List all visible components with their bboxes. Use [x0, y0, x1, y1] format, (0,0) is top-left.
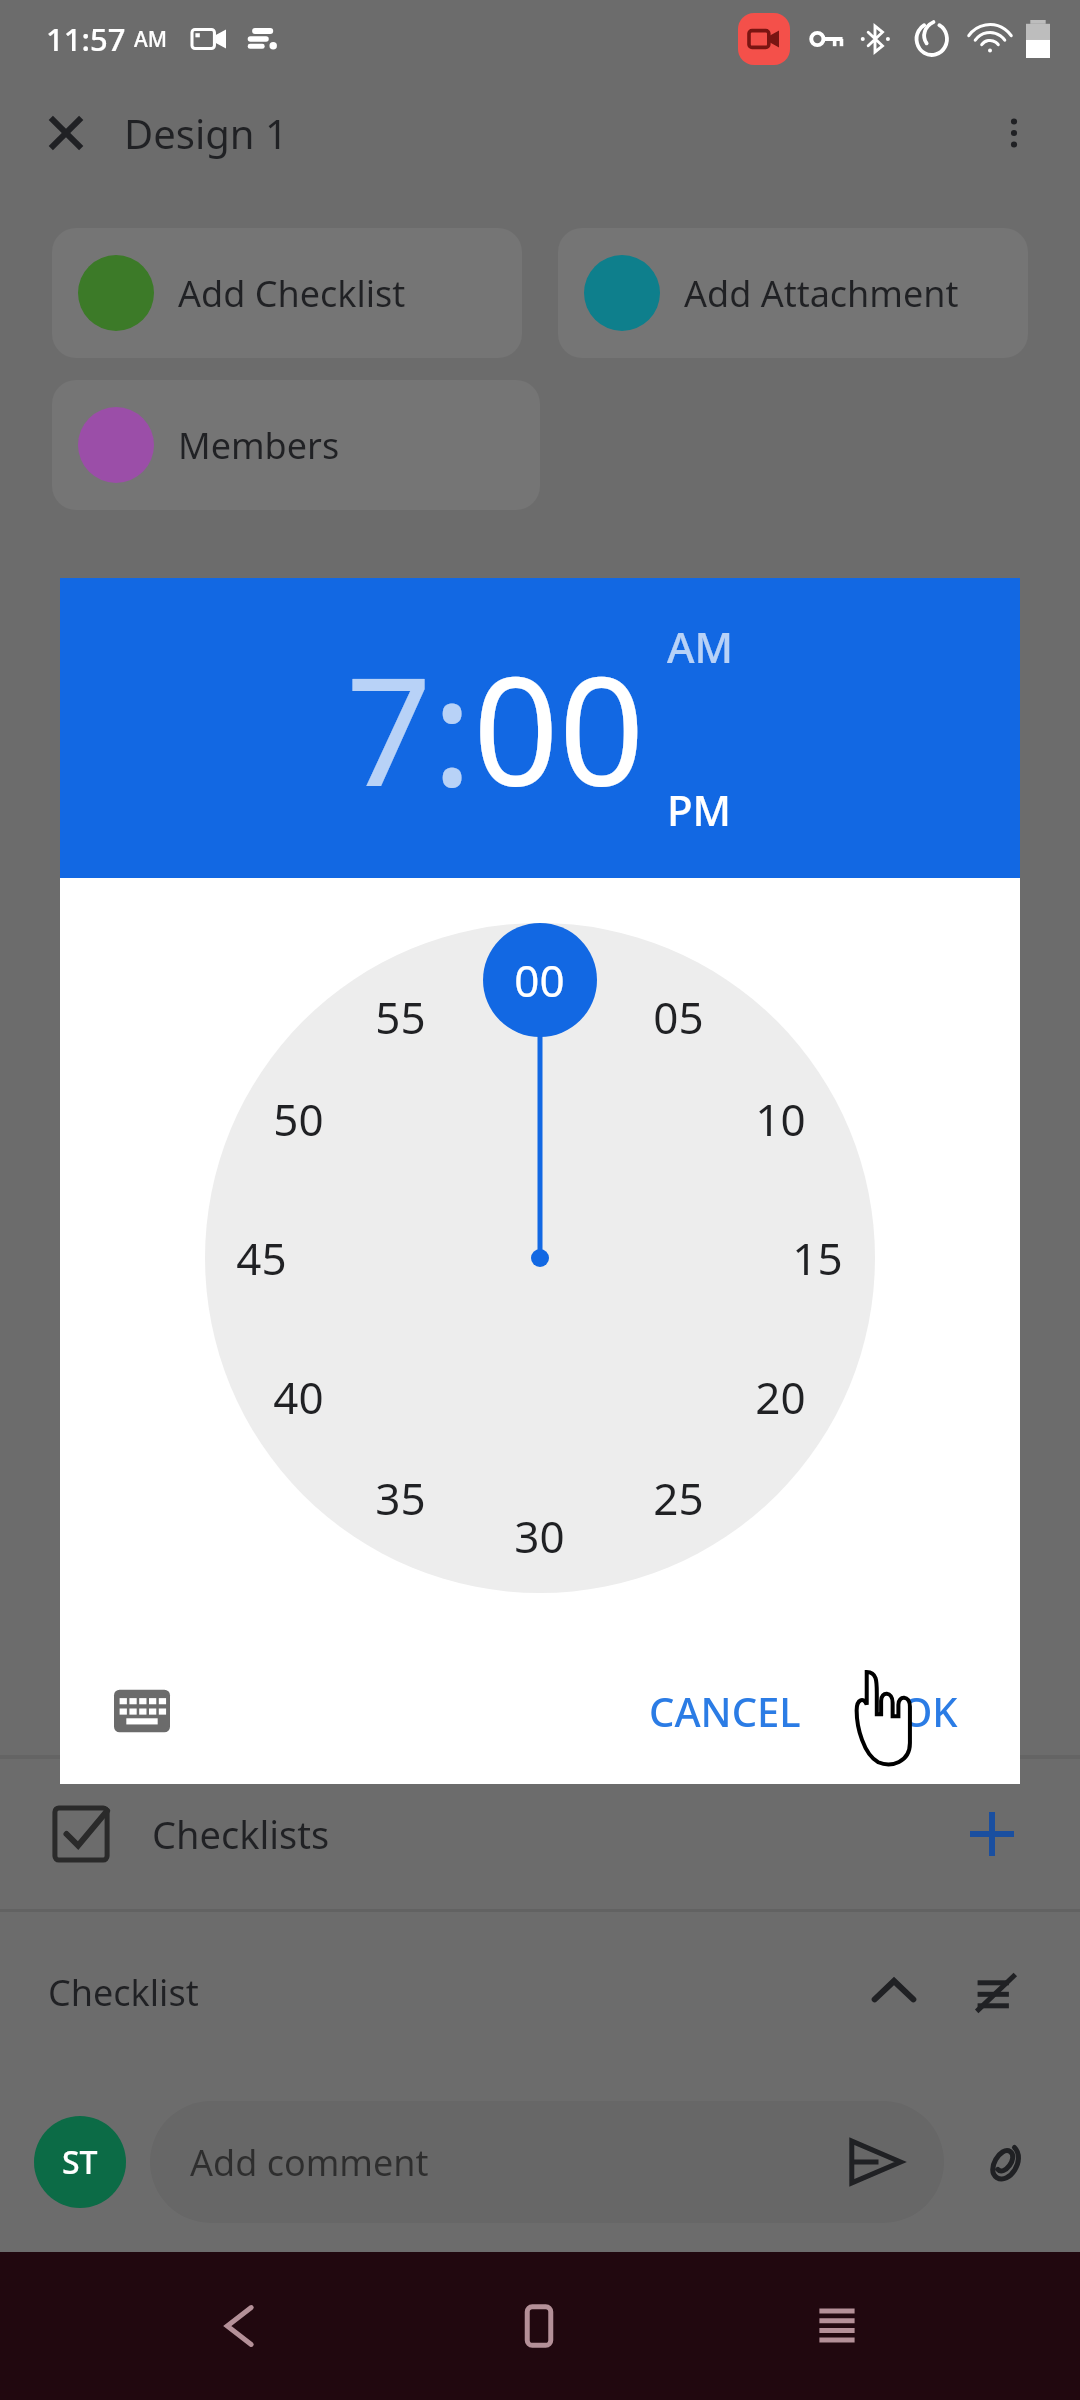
staticText: OK	[901, 1684, 958, 1738]
button[interactable]: 50	[273, 1089, 324, 1149]
button[interactable]: Members	[52, 380, 540, 510]
button[interactable]: 00	[473, 626, 645, 830]
button[interactable]: 20	[755, 1367, 806, 1427]
button[interactable]: 35	[375, 1468, 426, 1528]
staticText: AM	[134, 25, 168, 54]
button[interactable]: 05	[653, 987, 704, 1047]
staticText: :	[432, 626, 473, 830]
button[interactable]: 10	[755, 1089, 806, 1149]
staticText: Checklists	[152, 1808, 330, 1860]
button[interactable]: Switch to text input mode	[100, 1669, 184, 1753]
button[interactable]: OK	[879, 1668, 980, 1754]
button[interactable]: 45	[236, 1228, 287, 1288]
staticText: Add Checklist	[178, 269, 406, 318]
button[interactable]: Attach	[960, 2119, 1046, 2205]
button[interactable]: 00	[514, 950, 565, 1010]
staticText: Design 1	[124, 106, 288, 160]
button[interactable]: PM	[667, 781, 732, 838]
button[interactable]: 55	[375, 987, 426, 1047]
button[interactable]: Home	[484, 2271, 594, 2381]
button[interactable]: Close	[30, 97, 102, 169]
button[interactable]: 15	[792, 1228, 843, 1288]
button[interactable]: Add comment	[150, 2101, 944, 2223]
button[interactable]: 7	[346, 626, 432, 830]
button[interactable]: CANCEL	[627, 1668, 823, 1754]
button[interactable]: More options	[978, 97, 1050, 169]
staticText: CANCEL	[649, 1684, 801, 1738]
button[interactable]: Checklists	[0, 1759, 1080, 1909]
button[interactable]: AM	[667, 618, 734, 675]
button[interactable]: Recent apps	[782, 2271, 892, 2381]
staticText: Add Attachment	[684, 269, 959, 318]
staticText: Add comment	[190, 2138, 429, 2187]
staticText: Checklist	[48, 1968, 199, 2017]
button[interactable]: Back	[187, 2271, 297, 2381]
button[interactable]: 40	[273, 1367, 324, 1427]
button[interactable]: Collapse	[858, 1956, 930, 2028]
staticText: Members	[178, 421, 340, 470]
staticText: ST	[62, 2140, 98, 2184]
other: Send	[846, 2133, 904, 2191]
button[interactable]: Add checklist	[956, 1798, 1028, 1870]
button[interactable]: Hide checked items	[960, 1956, 1032, 2028]
staticText: 11:57	[46, 18, 126, 60]
button[interactable]: Add Checklist	[52, 228, 522, 358]
button[interactable]: Add Attachment	[558, 228, 1028, 358]
button[interactable]: 30	[514, 1506, 565, 1566]
button[interactable]: 25	[653, 1468, 704, 1528]
